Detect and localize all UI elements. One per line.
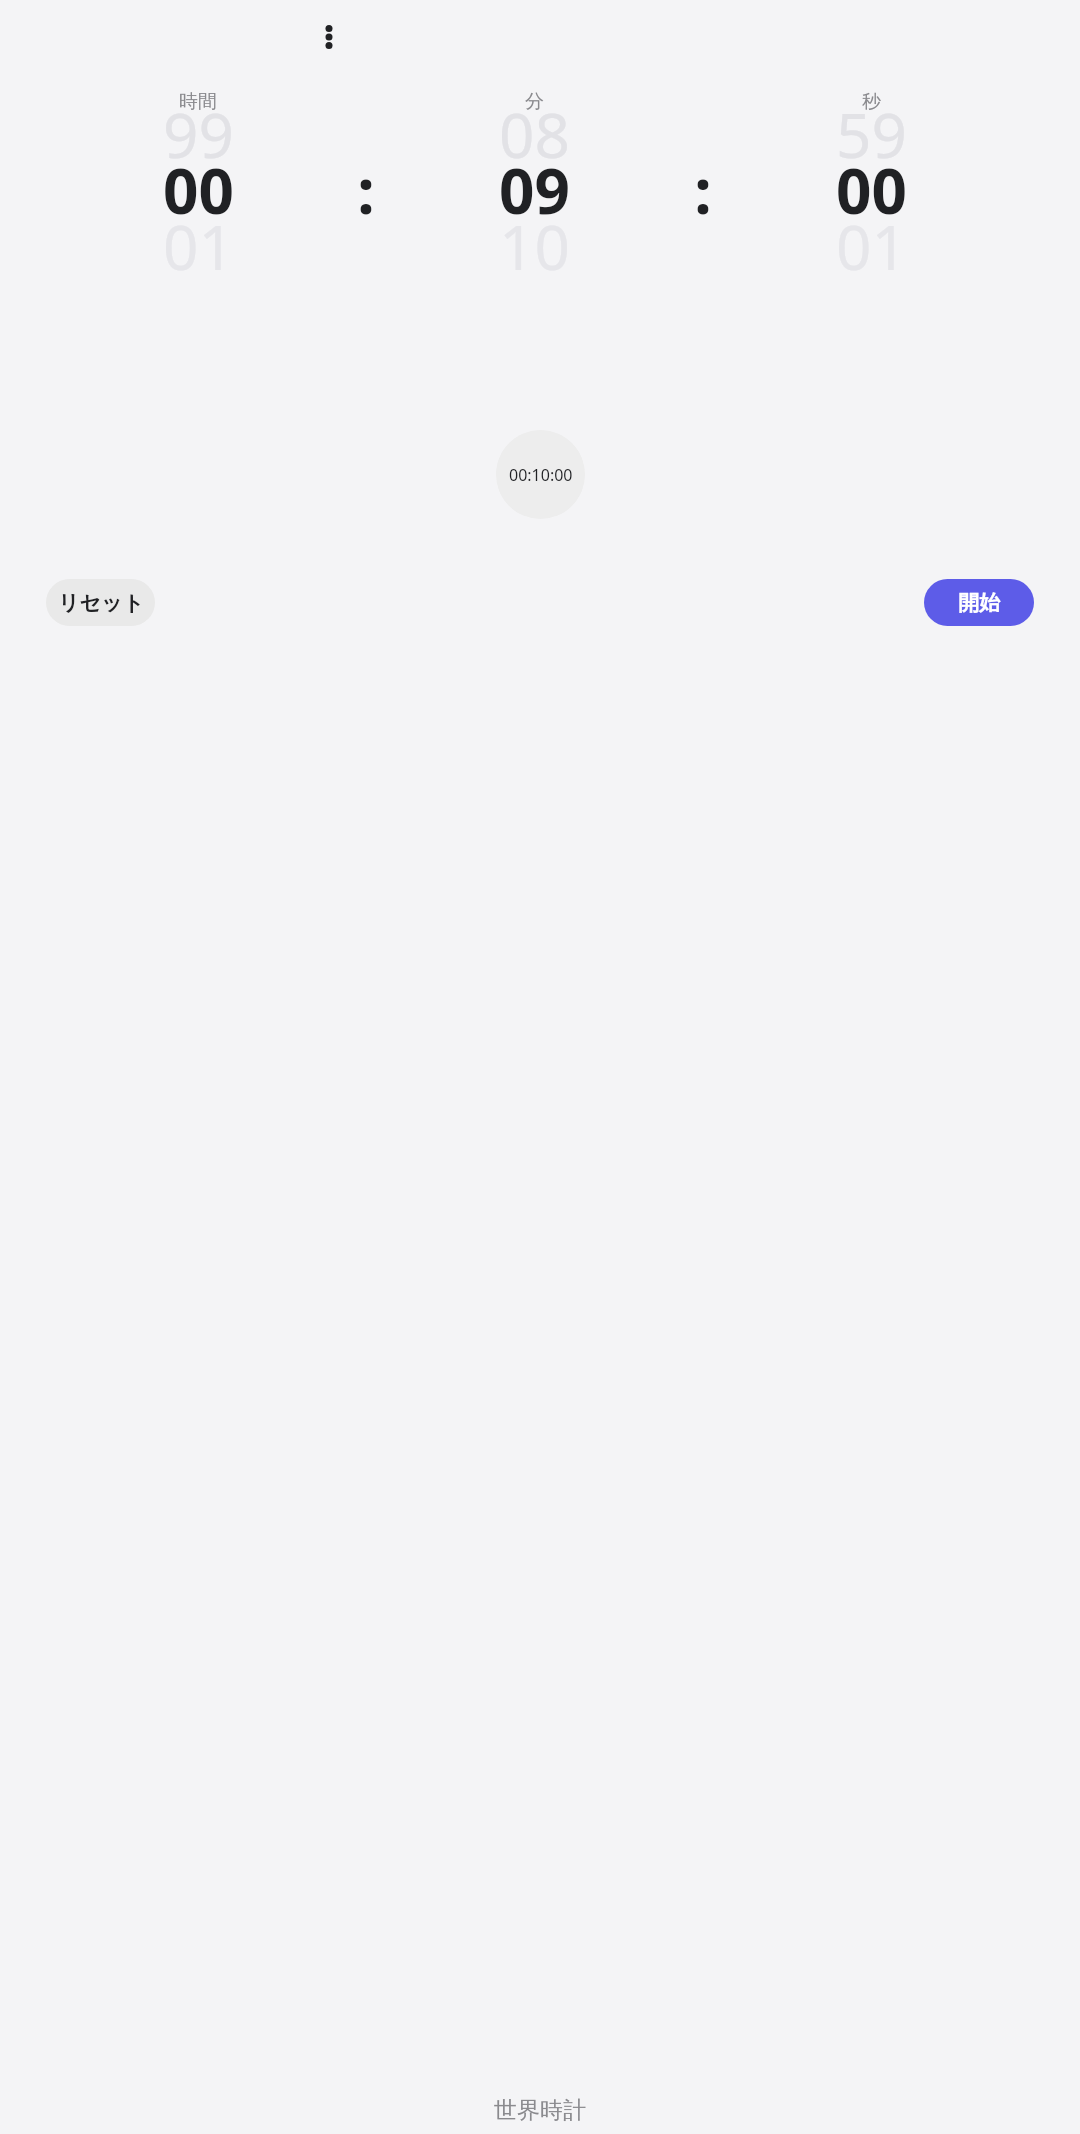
button[interactable]: 00 xyxy=(713,148,1030,232)
button[interactable]: 09 xyxy=(376,148,693,232)
staticText: 00:10:00 xyxy=(509,464,573,486)
staticText: 08 xyxy=(499,92,570,176)
staticText: : xyxy=(695,204,712,288)
staticText: 00 xyxy=(163,148,234,232)
staticText: 秒 xyxy=(862,90,881,114)
button[interactable]: リセット xyxy=(46,579,155,626)
staticText: 10 xyxy=(499,204,570,288)
button[interactable]: 59 xyxy=(713,92,1030,176)
button[interactable]: 00 xyxy=(40,148,356,232)
staticText: 59 xyxy=(836,92,907,176)
button[interactable]: 10 xyxy=(376,204,693,288)
staticText: 09 xyxy=(499,148,570,232)
button[interactable]: 01 xyxy=(40,204,356,288)
button[interactable]: More options xyxy=(305,13,353,61)
staticText: 世界時計 xyxy=(494,2096,586,2125)
staticText: : xyxy=(694,148,712,232)
button[interactable]: 08 xyxy=(376,92,693,176)
button[interactable]: 開始 xyxy=(924,579,1034,626)
staticText: : xyxy=(358,204,375,288)
staticText: : xyxy=(357,148,375,232)
staticText: 01 xyxy=(836,204,907,288)
staticText: 00 xyxy=(836,148,907,232)
button[interactable]: 00:10:00 xyxy=(496,430,585,519)
button[interactable]: 99 xyxy=(40,92,356,176)
button[interactable]: 世界時計 xyxy=(0,2096,1080,2131)
button[interactable]: 01 xyxy=(713,204,1030,288)
staticText: 01 xyxy=(163,204,234,288)
staticText: リセット xyxy=(58,590,144,616)
staticText: 分 xyxy=(525,90,544,114)
staticText: 開始 xyxy=(958,590,1000,616)
staticText: 99 xyxy=(163,92,234,176)
staticText: 時間 xyxy=(179,90,217,114)
